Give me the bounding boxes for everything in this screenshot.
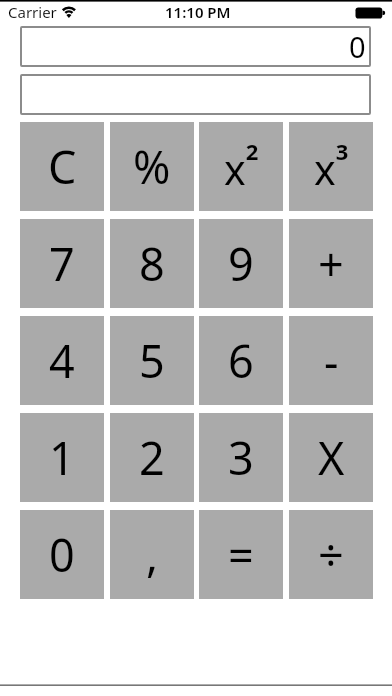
staticText: 9 — [228, 233, 254, 294]
button[interactable]: x3 — [289, 122, 373, 211]
staticText: x3 — [314, 136, 349, 197]
staticText: 5 — [139, 330, 165, 391]
button[interactable]: 5 — [110, 316, 194, 405]
staticText: X — [318, 427, 345, 488]
button[interactable]: 4 — [20, 316, 104, 405]
button[interactable]: + — [289, 219, 373, 308]
button[interactable]: % — [110, 122, 194, 211]
staticText: 6 — [228, 330, 254, 391]
staticText: 3 — [228, 427, 254, 488]
staticText: , — [146, 524, 159, 585]
staticText: Carrier — [8, 2, 57, 21]
staticText: ÷ — [318, 524, 344, 585]
button[interactable]: 3 — [199, 413, 283, 502]
button[interactable]: 8 — [110, 219, 194, 308]
staticText: C — [48, 136, 77, 197]
button[interactable]: = — [199, 510, 283, 599]
button[interactable]: 1 — [20, 413, 104, 502]
button[interactable] — [20, 74, 371, 115]
staticText: 8 — [139, 233, 165, 294]
staticText: 0 — [49, 524, 75, 585]
staticText: + — [318, 233, 344, 294]
staticText: 11:10 PM — [165, 2, 231, 21]
button[interactable]: , — [110, 510, 194, 599]
button[interactable]: 6 — [199, 316, 283, 405]
button[interactable]: ÷ — [289, 510, 373, 599]
button[interactable]: 9 — [199, 219, 283, 308]
button[interactable]: - — [289, 316, 373, 405]
staticText: % — [133, 136, 171, 197]
button[interactable]: 0 — [20, 26, 371, 67]
staticText: 7 — [49, 233, 75, 294]
button[interactable]: X — [289, 413, 373, 502]
button[interactable]: C — [20, 122, 104, 211]
staticText: x2 — [224, 136, 259, 197]
staticText: 4 — [49, 330, 75, 391]
staticText: = — [228, 524, 254, 585]
button[interactable]: 2 — [110, 413, 194, 502]
staticText: 2 — [139, 427, 165, 488]
staticText: - — [324, 330, 339, 391]
button[interactable]: x2 — [199, 122, 283, 211]
button[interactable]: 7 — [20, 219, 104, 308]
staticText: 0 — [349, 27, 366, 66]
button[interactable]: 0 — [20, 510, 104, 599]
staticText: 1 — [49, 427, 75, 488]
